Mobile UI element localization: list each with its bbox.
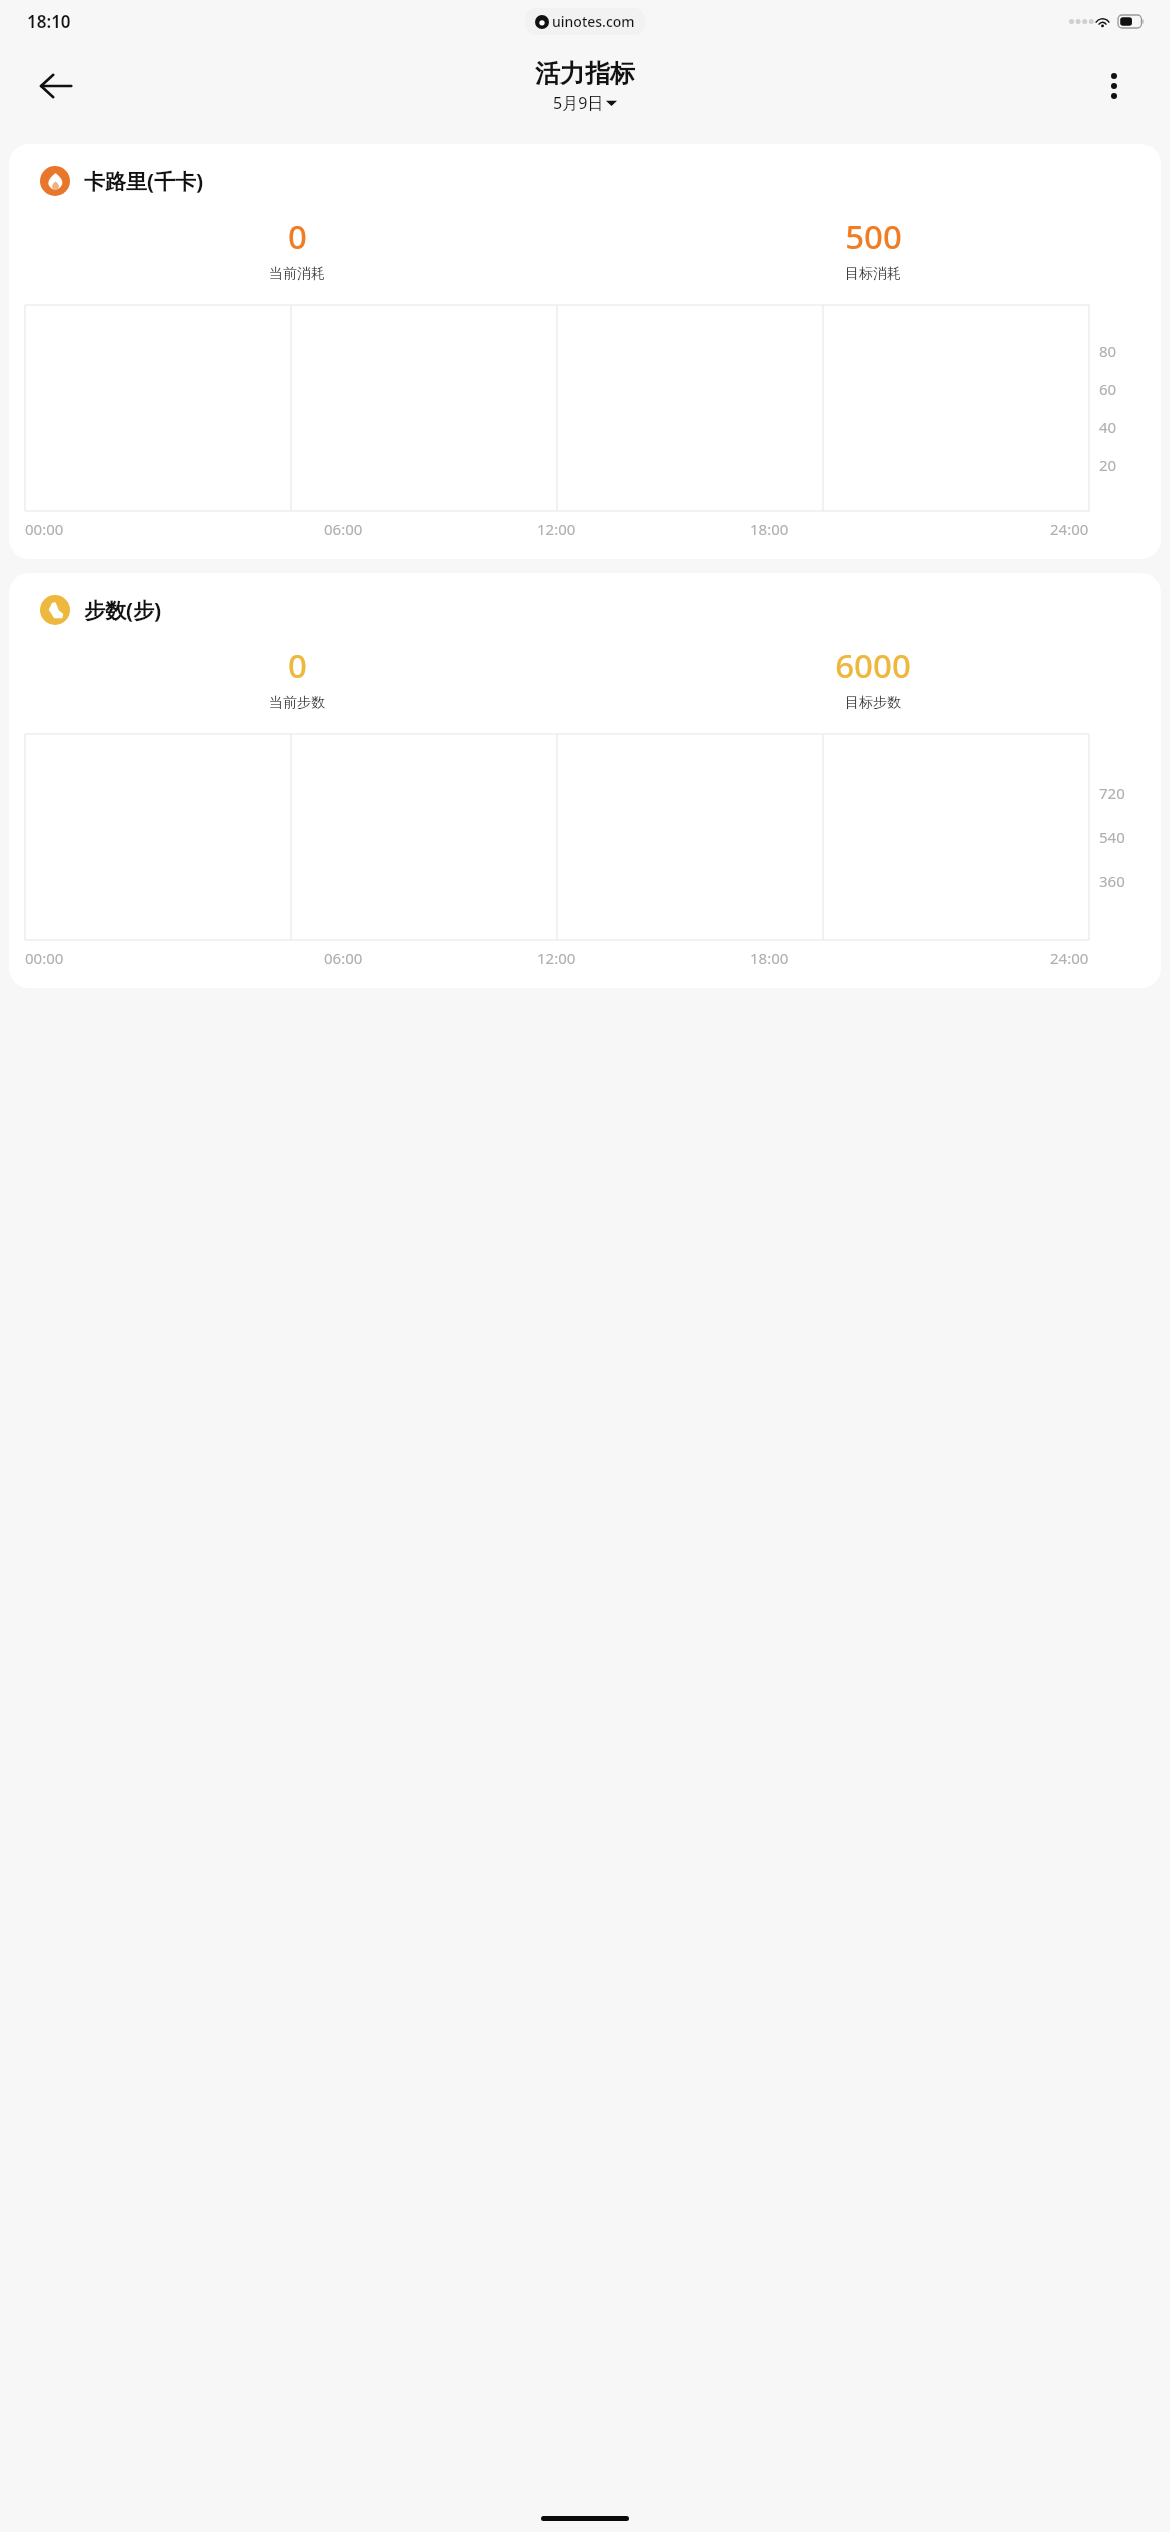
staticText: 360 bbox=[1099, 871, 1125, 891]
staticText: 18:00 bbox=[750, 519, 789, 539]
staticText: 18:10 bbox=[27, 10, 71, 33]
staticText: 60 bbox=[1099, 379, 1117, 399]
button[interactable]: 卡路里(千卡) bbox=[9, 144, 1161, 559]
staticText: 目标消耗 bbox=[845, 265, 901, 283]
staticText: 06:00 bbox=[324, 948, 363, 968]
staticText: 40 bbox=[1099, 417, 1117, 437]
staticText: 当前步数 bbox=[269, 694, 325, 712]
staticText: 80 bbox=[1099, 341, 1117, 361]
staticText: 0 bbox=[288, 214, 307, 259]
staticText: 00:00 bbox=[25, 519, 64, 539]
staticText: 20 bbox=[1099, 455, 1117, 475]
staticText: uinotes.com bbox=[552, 12, 635, 31]
staticText: 6000 bbox=[835, 643, 911, 688]
staticText: 活力指标 bbox=[535, 58, 635, 89]
staticText: 18:00 bbox=[750, 948, 789, 968]
staticText: 540 bbox=[1099, 827, 1125, 847]
staticText: 卡路里(千卡) bbox=[84, 167, 204, 196]
button[interactable]: 5月9日 bbox=[553, 92, 617, 114]
staticText: 当前消耗 bbox=[269, 265, 325, 283]
staticText: 12:00 bbox=[537, 948, 576, 968]
staticText: 0 bbox=[288, 643, 307, 688]
staticText: 24:00 bbox=[1050, 519, 1089, 539]
staticText: 720 bbox=[1099, 783, 1125, 803]
staticText: 5月9日 bbox=[553, 92, 604, 114]
staticText: 500 bbox=[845, 214, 902, 259]
staticText: 00:00 bbox=[25, 948, 64, 968]
staticText: 06:00 bbox=[324, 519, 363, 539]
button[interactable]: More options bbox=[1088, 60, 1140, 112]
button[interactable]: Back bbox=[30, 60, 82, 112]
staticText: 步数(步) bbox=[84, 596, 162, 625]
button[interactable]: 步数(步) bbox=[9, 573, 1161, 988]
staticText: 24:00 bbox=[1050, 948, 1089, 968]
staticText: 12:00 bbox=[537, 519, 576, 539]
staticText: 目标步数 bbox=[845, 694, 901, 712]
